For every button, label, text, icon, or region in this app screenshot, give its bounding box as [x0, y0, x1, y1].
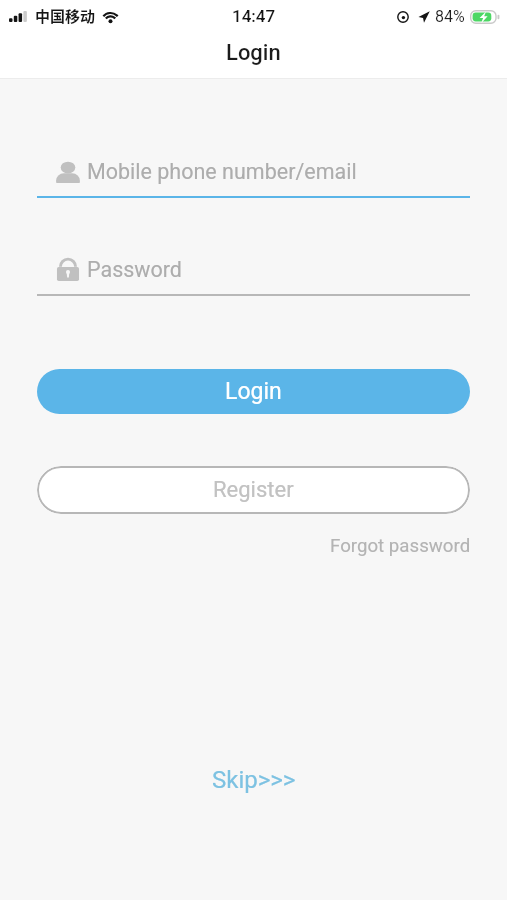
- staticText: Mobile phone number/email: [87, 159, 357, 184]
- button[interactable]: Forgot password: [324, 529, 477, 563]
- staticText: 14:47: [232, 6, 276, 26]
- button[interactable]: Register: [37, 466, 470, 514]
- staticText: Password: [87, 257, 182, 282]
- staticText: Register: [213, 477, 294, 503]
- button[interactable]: Skip>>>: [200, 760, 308, 800]
- button[interactable]: Mobile phone number/email: [37, 152, 470, 190]
- staticText: 84%: [435, 7, 465, 26]
- staticText: Skip>>>: [212, 766, 296, 794]
- button[interactable]: Login: [37, 369, 470, 414]
- button[interactable]: Password: [37, 250, 470, 288]
- staticText: Login: [225, 378, 282, 405]
- staticText: Login: [226, 40, 281, 66]
- staticText: 中国移动: [35, 5, 96, 27]
- staticText: Forgot password: [330, 535, 471, 557]
